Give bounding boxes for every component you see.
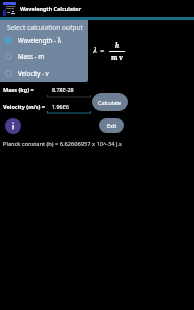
button[interactable]: Info	[5, 118, 21, 134]
button[interactable]: Velocity - v	[0, 65, 88, 81]
staticText: h	[115, 41, 120, 50]
staticText: Planck constant (h) = 6.62606957 x 10^-3…	[3, 140, 122, 148]
button[interactable]: Mass - m	[0, 48, 88, 64]
staticText: Velocity - v	[18, 69, 49, 77]
staticText: Mass - m	[18, 52, 45, 60]
staticText: 1.96E6	[52, 103, 69, 110]
staticText: Wavelength - λ	[18, 36, 61, 44]
button[interactable]: Wavelength - λ	[0, 32, 88, 48]
staticText: Velocity (m/s) =	[3, 103, 45, 110]
button[interactable]: Exit	[99, 118, 124, 133]
staticText: Exit	[107, 122, 117, 129]
staticText: m v	[111, 53, 124, 62]
staticText: Wavelength Calculator	[20, 5, 82, 12]
staticText: λ	[93, 45, 98, 55]
staticText: Mass (kg) =	[3, 86, 34, 93]
button[interactable]: Calculate	[92, 93, 128, 111]
staticText: =	[100, 45, 105, 55]
staticText: Calculate	[98, 99, 122, 106]
staticText: Select calculation output	[7, 23, 84, 32]
staticText: 8.78E-28	[52, 86, 74, 93]
